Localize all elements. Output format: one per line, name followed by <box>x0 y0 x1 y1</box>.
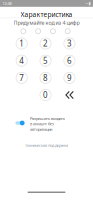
staticText: 8 <box>43 73 48 83</box>
button[interactable]: 6 <box>64 55 75 66</box>
button[interactable]: 7 <box>16 72 27 83</box>
staticText: Характеристика <box>20 10 72 19</box>
staticText: 12:48 <box>2 1 11 6</box>
staticText: 3 <box>67 38 72 49</box>
button[interactable]: 3 <box>64 38 75 49</box>
button[interactable]: 0 <box>40 89 51 101</box>
staticText: 5 <box>43 55 48 66</box>
button[interactable]: 9 <box>64 72 75 83</box>
button[interactable]: Стереть <box>64 89 75 101</box>
button[interactable]: Разрешить входить в аккаунт без авториза… <box>15 120 25 126</box>
button[interactable]: 2 <box>40 38 51 49</box>
staticText: Придумайте код из 4 цифр <box>13 19 79 26</box>
button[interactable]: Техническая поддержка <box>0 142 93 148</box>
button[interactable]: 8 <box>40 72 51 83</box>
button[interactable]: 1 <box>16 38 27 49</box>
staticText: ⌁ ▮ <box>85 1 90 6</box>
staticText: 7 <box>19 73 24 83</box>
button[interactable]: 5 <box>40 55 51 66</box>
staticText: 4 <box>19 55 24 66</box>
staticText: 2 <box>43 38 48 49</box>
staticText: 1 <box>19 38 24 49</box>
staticText: Техническая поддержка <box>25 142 68 148</box>
button[interactable]: 4 <box>16 55 27 66</box>
staticText: Разрешить входить в аккаунт без авториза… <box>30 116 65 132</box>
staticText: 6 <box>67 55 72 66</box>
staticText: 9 <box>67 73 72 83</box>
staticText: 0 <box>43 90 48 100</box>
